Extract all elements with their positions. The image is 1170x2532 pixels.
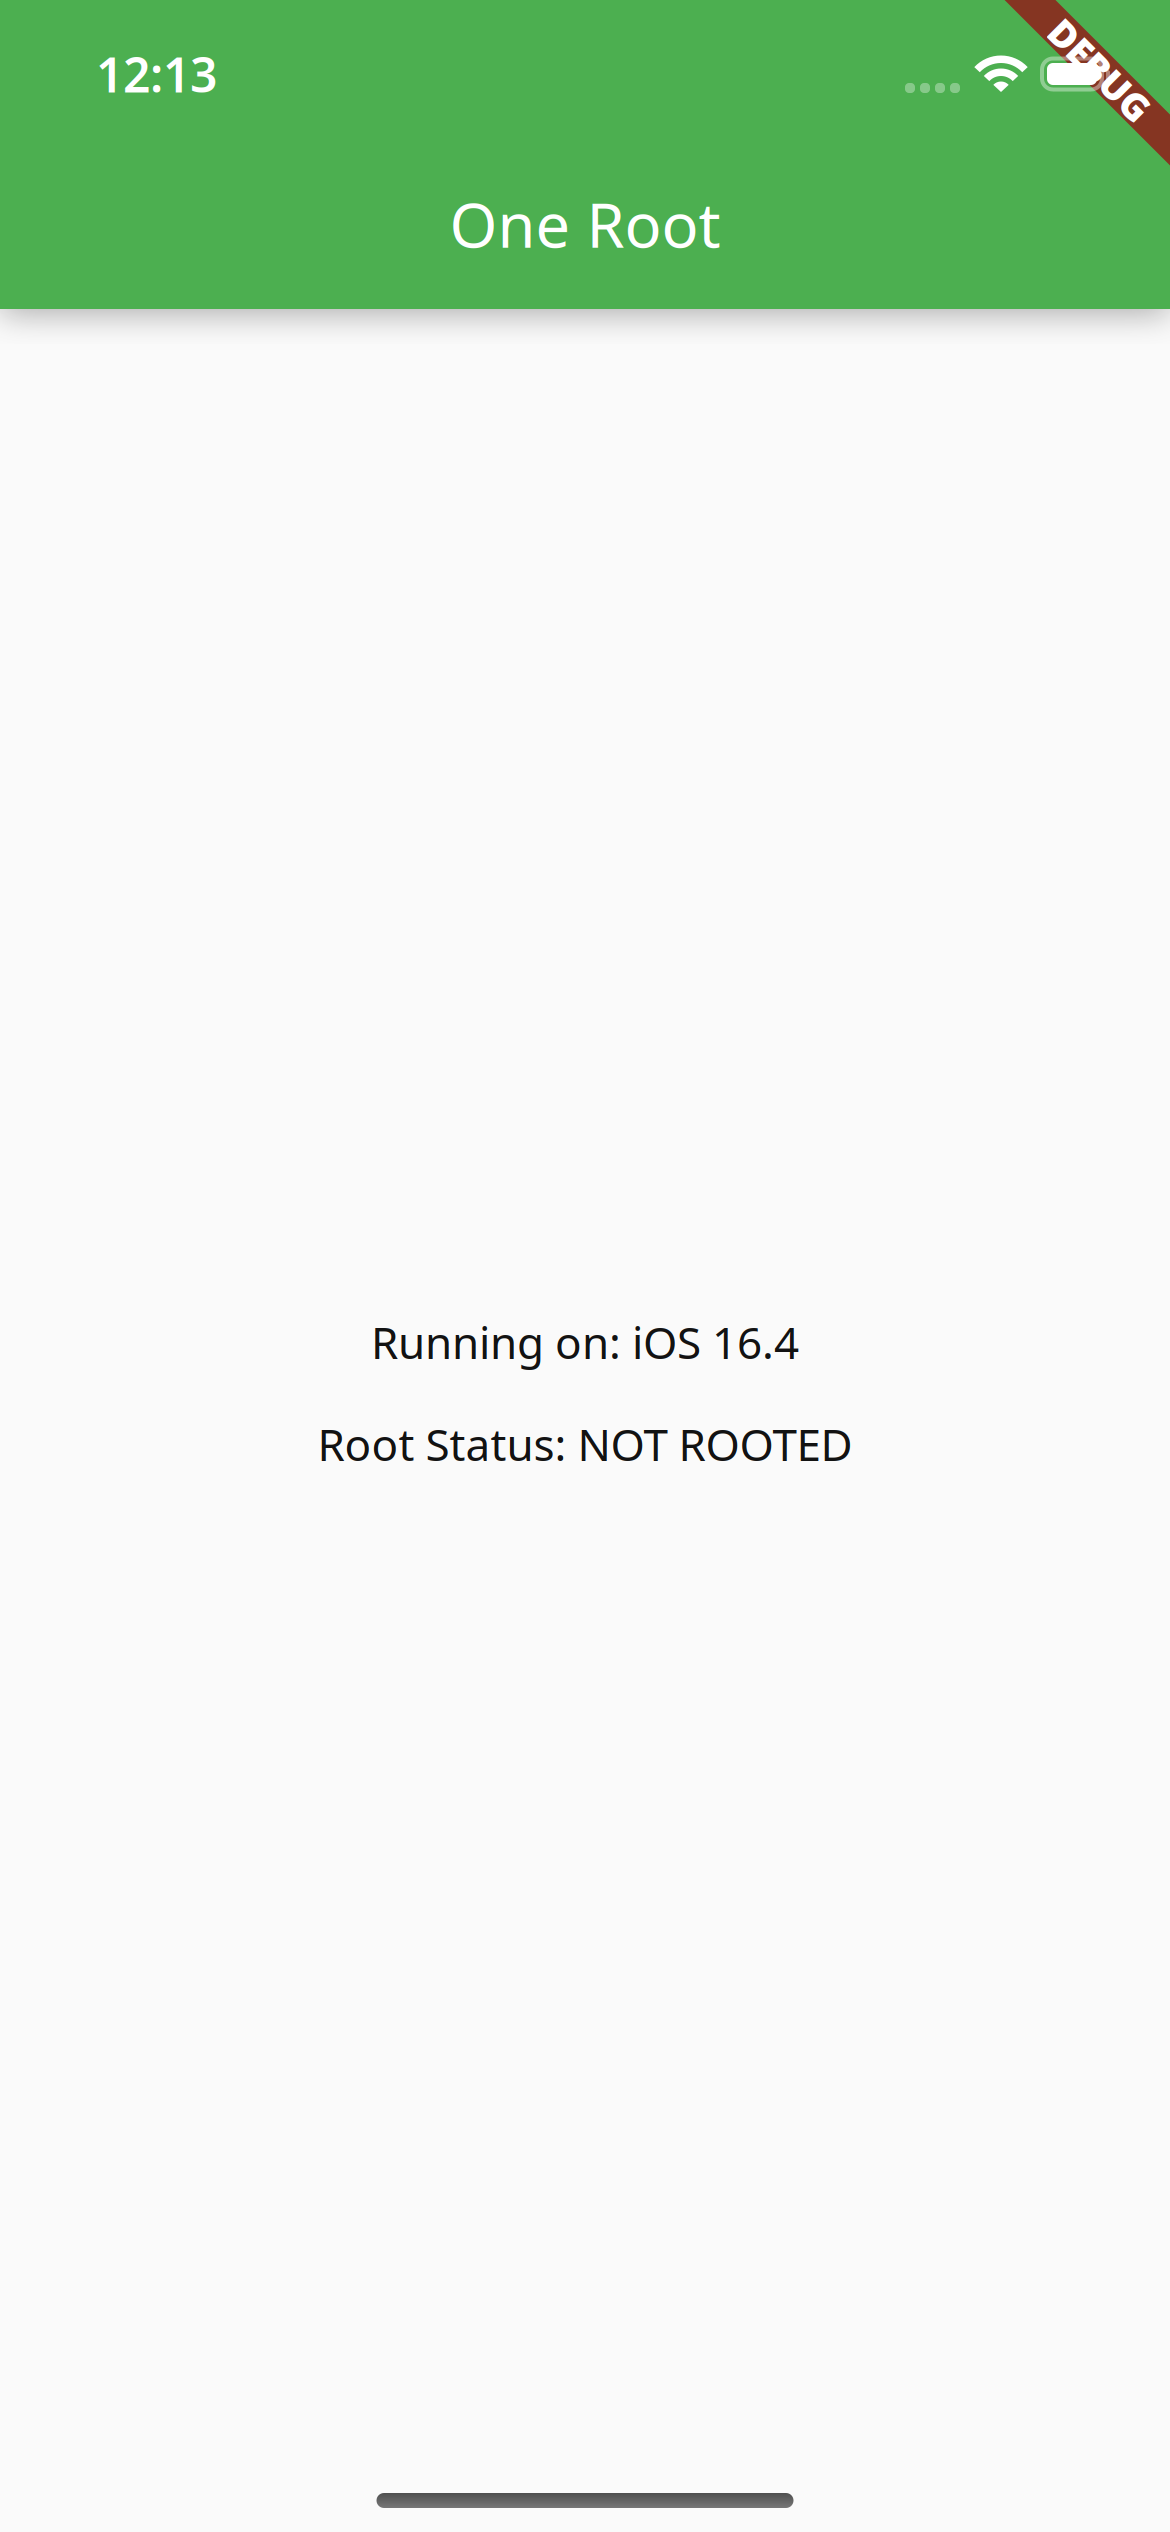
- staticText: 12:13: [96, 42, 217, 106]
- staticText: Running on: iOS 16.4: [371, 1313, 799, 1371]
- staticText: Root Status: NOT ROOTED: [317, 1415, 852, 1473]
- staticText: DEBUG: [1036, 45, 1164, 95]
- staticText: One Root: [449, 183, 720, 265]
